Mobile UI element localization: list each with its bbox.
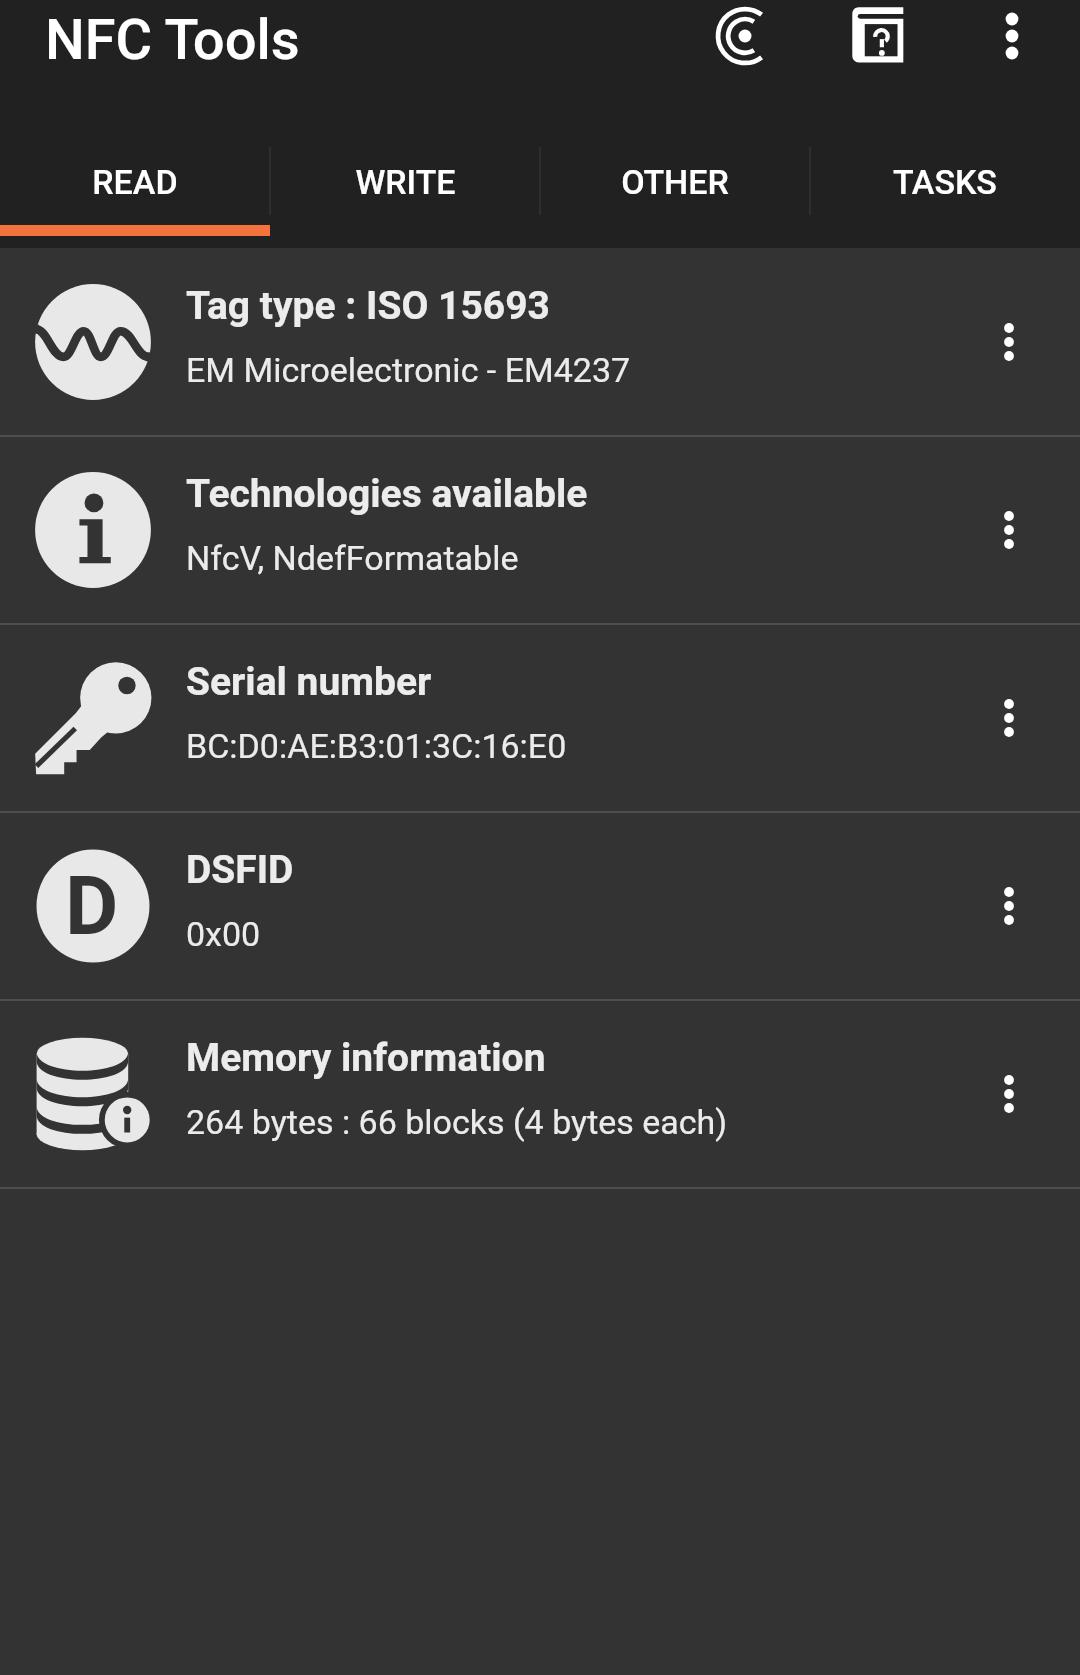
staticText: Serial number bbox=[186, 659, 432, 705]
staticText: READ bbox=[92, 162, 178, 202]
staticText: 0x00 bbox=[186, 914, 261, 954]
staticText: WRITE bbox=[355, 162, 456, 202]
button[interactable]: More options bbox=[948, 0, 1080, 72]
button[interactable]: Memory information bbox=[0, 1001, 1080, 1187]
staticText: NFC Tools bbox=[45, 7, 300, 73]
staticText: OTHER bbox=[621, 162, 729, 202]
button[interactable]: More options bbox=[938, 1001, 1080, 1187]
button[interactable]: WRITE bbox=[270, 108, 540, 248]
button[interactable]: READ bbox=[0, 108, 270, 248]
staticText: DSFID bbox=[186, 847, 294, 893]
staticText: 264 bytes : 66 blocks (4 bytes each) bbox=[186, 1102, 728, 1142]
button[interactable]: D bbox=[0, 813, 1080, 999]
button[interactable]: More options bbox=[938, 813, 1080, 999]
staticText: NfcV, NdefFormatable bbox=[186, 538, 519, 578]
staticText: BC:D0:AE:B3:01:3C:16:E0 bbox=[186, 726, 567, 766]
staticText: Memory information bbox=[186, 1035, 546, 1081]
button[interactable]: More options bbox=[938, 437, 1080, 623]
button[interactable]: NFC bbox=[676, 0, 814, 72]
button[interactable]: Technologies available bbox=[0, 437, 1080, 623]
button[interactable]: Help bbox=[814, 0, 948, 72]
staticText: EM Microelectronic - EM4237 bbox=[186, 350, 631, 390]
staticText: D bbox=[65, 858, 119, 954]
button[interactable]: More options bbox=[938, 625, 1080, 811]
button[interactable]: Serial number bbox=[0, 625, 1080, 811]
staticText: Technologies available bbox=[186, 471, 588, 517]
button[interactable]: More options bbox=[938, 249, 1080, 435]
staticText: Tag type : ISO 15693 bbox=[186, 283, 550, 329]
button[interactable]: OTHER bbox=[540, 108, 810, 248]
staticText: TASKS bbox=[893, 162, 997, 202]
button[interactable]: Tag type : ISO 15693 bbox=[0, 249, 1080, 435]
button[interactable]: TASKS bbox=[810, 108, 1080, 248]
